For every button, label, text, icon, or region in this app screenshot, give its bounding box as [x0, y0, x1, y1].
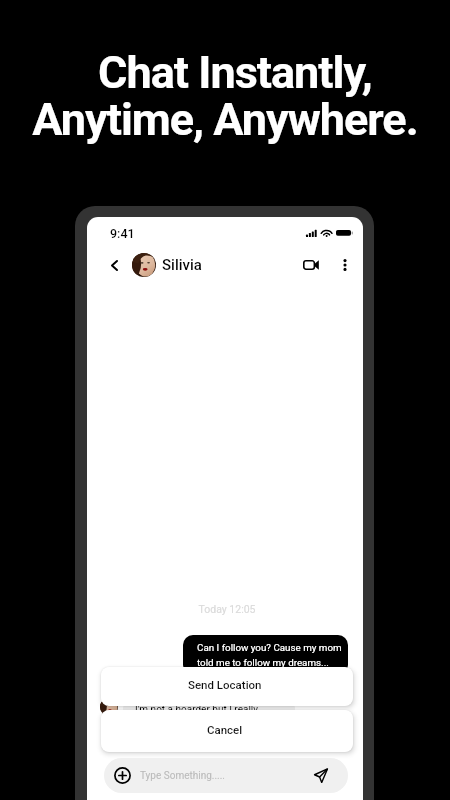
staticText: Cancel	[207, 723, 243, 736]
button[interactable]: Back	[106, 257, 122, 273]
staticText: Send Location	[188, 678, 262, 691]
staticText: Silivia	[162, 256, 202, 274]
other: Send	[314, 768, 328, 783]
staticText: Chat Instantly,	[10, 46, 450, 99]
staticText: Anytime, Anywhere.	[0, 93, 450, 146]
staticText: I'm not a hoarder but I really...	[135, 704, 266, 716]
button[interactable]: Cancel	[101, 710, 353, 752]
staticText: Today 12:05	[89, 603, 363, 615]
button[interactable]: Send Location	[101, 667, 353, 706]
staticText: Type Something.....	[140, 770, 225, 782]
staticText: Can I follow you? Cause my mom told me t…	[197, 642, 345, 668]
button[interactable]: Video call	[301, 255, 321, 275]
button[interactable]: Can I follow you? Cause my mom told me t…	[183, 635, 348, 675]
button[interactable]: More options	[336, 256, 354, 274]
staticText: 9:41	[110, 226, 135, 241]
button[interactable]: Type Something.....	[104, 758, 348, 793]
